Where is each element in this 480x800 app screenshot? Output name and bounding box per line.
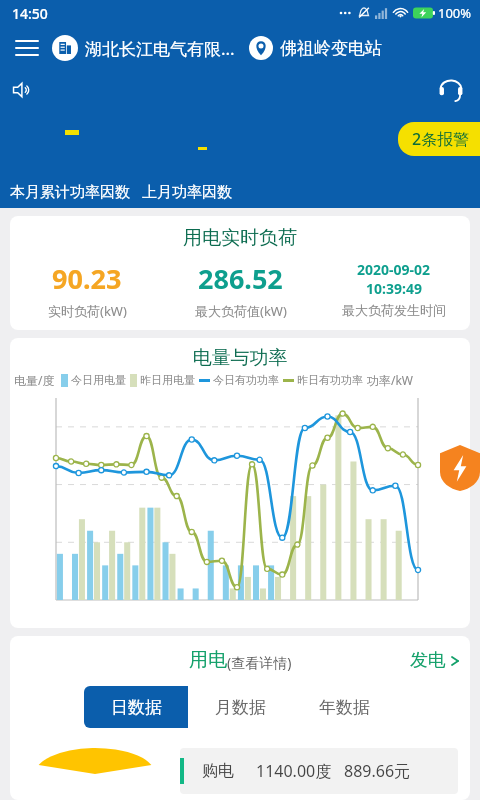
staticText: 佛祖岭变电站 [280, 38, 382, 59]
staticText: 最大负荷值(kW) [195, 302, 287, 320]
staticText: 100% [438, 4, 472, 22]
staticText: 2020-09-02 [357, 260, 431, 279]
staticText: 购电 [202, 761, 234, 781]
staticText: 发电 [410, 649, 446, 672]
button[interactable]: Customer service [434, 73, 468, 107]
button[interactable]: 用电实时负荷 [10, 216, 470, 330]
staticText: 功率/kW [367, 372, 414, 388]
button[interactable]: 购电 [180, 748, 458, 794]
staticText: 月数据 [215, 697, 266, 718]
staticText: 10:39:49 [366, 279, 422, 298]
staticText: 日数据 [111, 697, 162, 718]
staticText: 今日用电量 [71, 373, 126, 387]
staticText: 昨日有功功率 [297, 373, 363, 387]
staticText: 最大负荷发生时间 [342, 302, 446, 318]
staticText: 年数据 [319, 697, 370, 718]
button[interactable]: 年数据 [292, 686, 396, 728]
button[interactable]: Menu [10, 31, 44, 65]
button[interactable]: 佛祖岭变电站 [249, 36, 382, 60]
staticText: 90.23 [52, 260, 122, 297]
button[interactable]: Announcement [12, 74, 44, 106]
staticText: (查看详情) [227, 653, 292, 672]
staticText: 实时负荷(kW) [48, 302, 127, 320]
button[interactable]: 湖北长江电气有限... [52, 35, 235, 61]
staticText: 电量与功率 [10, 346, 470, 370]
staticText: 用电 [189, 648, 227, 672]
button[interactable]: 用电 [189, 648, 292, 672]
staticText: 用电实时负荷 [10, 226, 470, 250]
button[interactable]: 月数据 [188, 686, 292, 728]
staticText: 电量/度 [14, 372, 55, 388]
staticText: 889.66元 [344, 760, 411, 782]
staticText: 286.52 [198, 260, 283, 297]
button[interactable]: 发电 [410, 649, 460, 672]
button[interactable]: 电量与功率 [10, 338, 470, 628]
button[interactable]: 2条报警 [398, 122, 480, 156]
staticText: 本月累计功率因数 [10, 183, 130, 202]
staticText: 1140.00度 [256, 760, 332, 782]
staticText: 上月功率因数 [142, 183, 232, 202]
staticText: 14:50 [12, 4, 48, 23]
staticText: 湖北长江电气有限... [85, 37, 235, 60]
button[interactable]: 日数据 [84, 686, 188, 728]
staticText: 昨日用电量 [140, 373, 195, 387]
button[interactable]: Power assistant [440, 445, 480, 491]
staticText: 2条报警 [412, 128, 470, 150]
staticText: 今日有功功率 [213, 373, 279, 387]
